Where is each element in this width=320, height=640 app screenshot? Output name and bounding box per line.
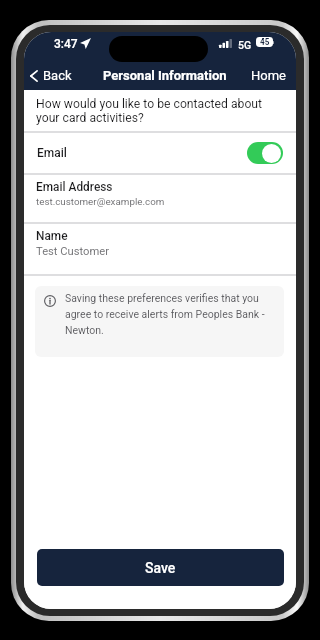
button[interactable]: Email [24, 133, 296, 173]
staticText: 5G [238, 39, 252, 51]
button[interactable]: Email Address [24, 175, 296, 222]
staticText: 3:47 [54, 37, 78, 51]
staticText: Email [37, 146, 67, 160]
button[interactable]: Save [37, 549, 284, 586]
button[interactable]: Home [241, 63, 296, 88]
staticText: 45 [260, 37, 270, 47]
staticText: Test Customer [36, 245, 109, 258]
staticText: Saving these preferences verifies that y… [65, 290, 276, 338]
staticText: test.customer@example.com [36, 196, 165, 207]
button[interactable]: Back [24, 63, 80, 88]
button[interactable]: Name [24, 224, 296, 274]
staticText: Home [251, 68, 286, 83]
staticText: Personal Information [103, 68, 227, 83]
staticText: Back [43, 68, 72, 83]
staticText: How would you like to be contacted about… [36, 97, 268, 125]
staticText: Save [145, 560, 176, 576]
staticText: Name [36, 229, 68, 243]
staticText: Email Address [36, 180, 113, 194]
